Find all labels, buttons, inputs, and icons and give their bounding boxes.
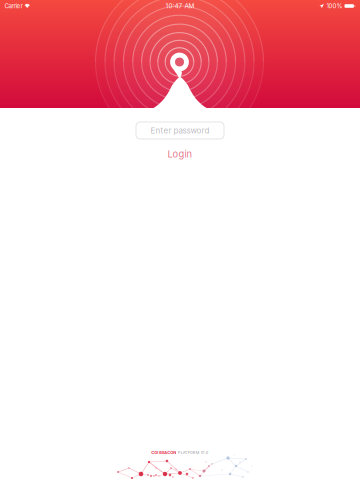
staticText: PLATFORM v1.0: [178, 450, 209, 455]
staticText: Enter password: [150, 126, 209, 135]
staticText: Login: [167, 148, 192, 160]
staticText: Carrier: [4, 2, 22, 10]
button[interactable]: Enter password: [136, 122, 224, 139]
staticText: CGI BEACON: [151, 450, 176, 455]
button[interactable]: Login: [145, 147, 215, 161]
staticText: 100%: [326, 2, 342, 10]
staticText: 10:47 AM: [165, 2, 194, 10]
